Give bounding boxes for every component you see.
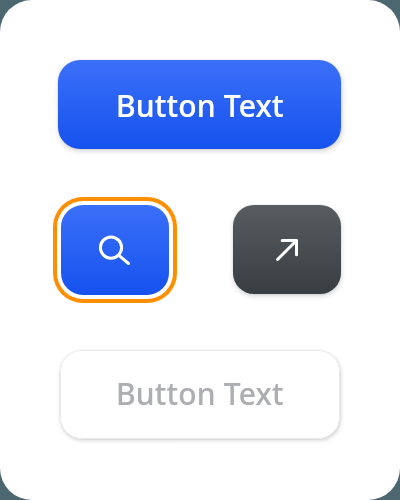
button[interactable]: Open	[233, 205, 341, 294]
button[interactable]: Button Text	[60, 350, 340, 439]
button[interactable]: Button Text	[58, 60, 341, 149]
staticText: Button Text	[116, 85, 284, 126]
button[interactable]: Search	[61, 205, 169, 295]
staticText: Button Text	[116, 373, 284, 414]
